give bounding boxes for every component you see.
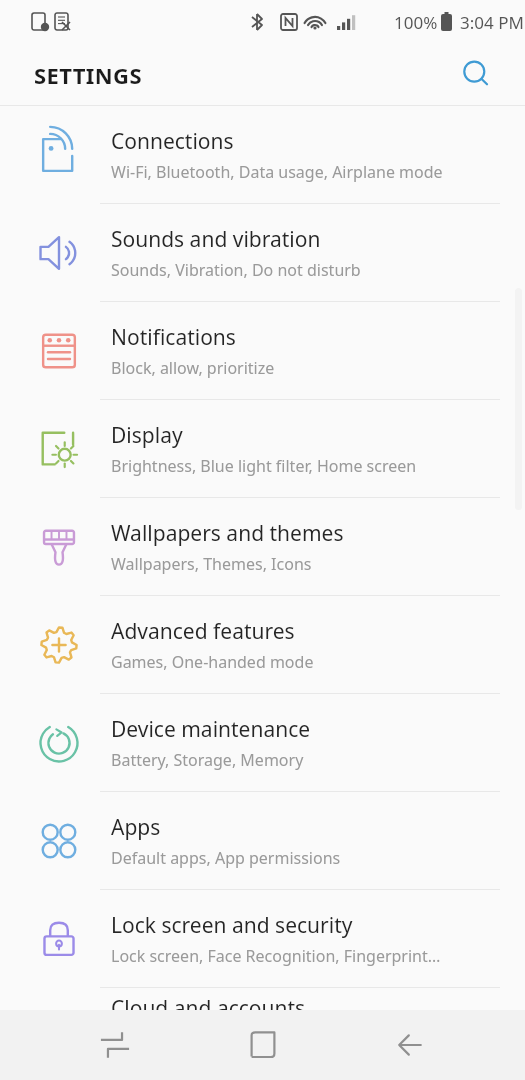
staticText: Connections	[111, 127, 234, 156]
staticText: Wi-Fi, Bluetooth, Data usage, Airplane m…	[111, 161, 443, 183]
button[interactable]: Notifications	[0, 302, 525, 400]
button[interactable]: Connections	[0, 106, 525, 204]
button[interactable]: Device maintenance	[0, 694, 525, 792]
staticText: Advanced features	[111, 617, 295, 646]
button[interactable]: Sounds and vibration	[0, 204, 525, 302]
button[interactable]: Lock screen and security	[0, 890, 525, 988]
staticText: Device maintenance	[111, 715, 311, 744]
staticText: Wallpapers, Themes, Icons	[111, 553, 312, 575]
staticText: Wallpapers and themes	[111, 519, 344, 548]
staticText: 100%	[394, 11, 438, 34]
staticText: Sounds and vibration	[111, 225, 321, 254]
staticText: Notifications	[111, 323, 236, 352]
staticText: SETTINGS	[34, 60, 142, 90]
staticText: Block, allow, prioritize	[111, 357, 275, 379]
button[interactable]: Back	[377, 1012, 443, 1078]
staticText: Display	[111, 421, 183, 450]
staticText: Lock screen and security	[111, 911, 353, 940]
staticText: Apps	[111, 813, 161, 842]
button[interactable]: Wallpapers and themes	[0, 498, 525, 596]
button[interactable]: Home	[230, 1012, 296, 1078]
button[interactable]: Display	[0, 400, 525, 498]
button[interactable]: Recent apps	[82, 1012, 148, 1078]
staticText: Lock screen, Face Recognition, Fingerpri…	[111, 945, 441, 967]
staticText: Sounds, Vibration, Do not disturb	[111, 259, 361, 281]
button[interactable]: Search	[451, 49, 503, 101]
button[interactable]: Advanced features	[0, 596, 525, 694]
staticText: Brightness, Blue light filter, Home scre…	[111, 455, 417, 477]
staticText: 3:04 PM	[460, 11, 524, 34]
staticText: Battery, Storage, Memory	[111, 749, 304, 771]
button[interactable]: Apps	[0, 792, 525, 890]
staticText: Games, One-handed mode	[111, 651, 314, 673]
staticText: Default apps, App permissions	[111, 847, 341, 869]
staticText: Cloud and accounts	[111, 994, 306, 1016]
